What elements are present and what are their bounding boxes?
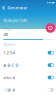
staticText: 20 [3,32,7,37]
staticText: Xk3#pQz7vM [3,18,27,23]
button[interactable]: Generate new password [46,23,55,33]
staticText: Length [3,27,13,31]
button[interactable]: a b c d [0,71,56,84]
staticText: Generator [7,5,27,10]
button[interactable]: A B C D [0,59,56,71]
staticText: A B C D [3,62,18,68]
button[interactable]: Back [2,5,6,11]
button[interactable]: - ! @ # [0,84,56,96]
button[interactable]: 1 2 3 4 [0,46,56,59]
staticText: a b c d [3,75,14,80]
staticText: 1 2 3 4 [3,50,14,55]
staticText: - ! @ # [3,87,15,92]
staticText: Options [3,43,14,46]
